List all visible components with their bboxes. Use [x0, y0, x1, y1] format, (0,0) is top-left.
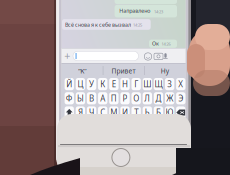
staticText: К: [100, 79, 105, 89]
staticText: Ок: [152, 40, 159, 47]
button[interactable]: Р: [120, 92, 130, 104]
staticText: П: [111, 93, 117, 104]
button[interactable]: Home: [111, 148, 130, 167]
button[interactable]: К: [98, 78, 107, 90]
staticText: Ф: [66, 93, 73, 104]
button[interactable]: [176, 106, 185, 119]
button[interactable]: П: [109, 92, 118, 104]
button[interactable]: “К”: [61, 66, 103, 75]
staticText: Ну: [161, 67, 169, 75]
button[interactable]: Щ: [154, 78, 163, 90]
button[interactable]: У: [87, 78, 96, 90]
staticText: В: [89, 93, 94, 104]
staticText: Н: [122, 79, 128, 89]
button[interactable]: З: [165, 78, 174, 90]
staticText: Направлено: [119, 7, 150, 14]
staticText: Э: [178, 93, 183, 104]
button[interactable]: Г: [131, 78, 141, 90]
staticText: У: [89, 79, 94, 89]
staticText: Г: [134, 79, 138, 89]
button[interactable]: [65, 106, 74, 119]
button[interactable]: С: [98, 106, 107, 119]
staticText: И: [122, 107, 128, 118]
staticText: 14:26: [161, 41, 170, 47]
staticText: Т: [134, 107, 138, 118]
staticText: М: [110, 107, 117, 118]
staticText: Р: [122, 93, 127, 104]
button[interactable]: М: [109, 106, 118, 119]
button[interactable]: И: [120, 106, 130, 119]
button[interactable]: Ю: [165, 106, 174, 119]
staticText: О: [133, 93, 139, 104]
button[interactable]: Я: [76, 106, 85, 119]
staticText: Х: [178, 79, 183, 89]
button[interactable]: Е: [109, 78, 118, 90]
button[interactable]: Д: [154, 92, 163, 104]
button[interactable]: Т: [131, 106, 141, 119]
staticText: Й: [66, 79, 72, 89]
staticText: Л: [144, 93, 150, 104]
staticText: Я: [78, 107, 83, 118]
staticText: Ю: [166, 107, 174, 118]
staticText: Привет: [111, 67, 135, 75]
button[interactable]: Привет: [103, 66, 144, 75]
button[interactable]: Ы: [76, 92, 85, 104]
button[interactable]: Ну: [144, 66, 185, 75]
staticText: “К”: [78, 67, 86, 75]
button[interactable]: Ф: [65, 92, 74, 104]
staticText: Всё снова я к себе вызвал: [65, 21, 131, 28]
button[interactable]: А: [98, 92, 107, 104]
button[interactable]: Х: [176, 78, 185, 90]
staticText: Ч: [89, 107, 94, 118]
staticText: А: [100, 93, 105, 104]
button[interactable]: Attach: [63, 51, 71, 59]
staticText: Ш: [143, 79, 151, 89]
staticText: 14:25: [133, 22, 142, 28]
button[interactable]: Л: [143, 92, 152, 104]
staticText: Е: [112, 79, 116, 89]
button[interactable]: Ь: [143, 106, 152, 119]
button[interactable]: О: [131, 92, 141, 104]
staticText: Ц: [77, 79, 83, 89]
staticText: 14:23: [154, 9, 163, 14]
button[interactable]: Б: [154, 106, 163, 119]
staticText: Б: [156, 107, 161, 118]
button[interactable]: Ш: [143, 78, 152, 90]
staticText: С: [100, 107, 105, 118]
button[interactable]: Camera: [154, 53, 163, 60]
staticText: З: [167, 79, 172, 89]
staticText: Ь: [145, 107, 150, 118]
button[interactable]: Emoji: [143, 52, 152, 61]
button[interactable]: Й: [65, 78, 74, 90]
button[interactable]: В: [87, 92, 96, 104]
button[interactable]: Н: [120, 78, 130, 90]
button[interactable]: Э: [176, 92, 185, 104]
button[interactable]: Ц: [76, 78, 85, 90]
button[interactable]: Ч: [87, 106, 96, 119]
staticText: Ы: [77, 93, 84, 104]
staticText: +: [64, 48, 70, 63]
staticText: Ж: [166, 93, 173, 104]
staticText: Щ: [154, 79, 162, 89]
button[interactable]: Voice message: [163, 53, 168, 59]
staticText: Д: [155, 93, 161, 104]
button[interactable]: Ж: [165, 92, 174, 104]
